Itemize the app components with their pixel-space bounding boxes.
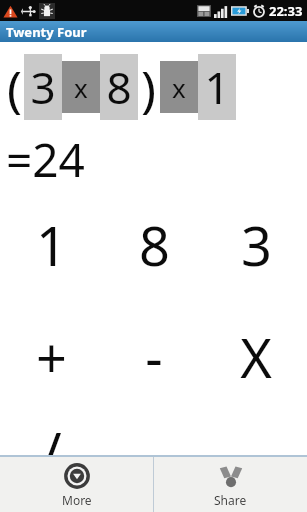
staticText: x bbox=[172, 70, 186, 105]
button[interactable]: 3 bbox=[205, 208, 307, 278]
staticText: / bbox=[41, 414, 62, 484]
staticText: X bbox=[240, 320, 272, 390]
button[interactable]: Share bbox=[154, 457, 307, 512]
button[interactable] bbox=[205, 414, 307, 484]
staticText: 8 bbox=[106, 57, 132, 117]
staticText: Twenty Four bbox=[6, 23, 87, 41]
button[interactable]: X bbox=[205, 320, 307, 390]
staticText: 8 bbox=[139, 208, 170, 278]
button[interactable]: + bbox=[0, 320, 103, 390]
button[interactable]: 8 bbox=[100, 54, 138, 120]
staticText: =24 bbox=[6, 128, 85, 191]
button[interactable]: - bbox=[103, 320, 205, 390]
button[interactable]: 8 bbox=[103, 208, 205, 278]
button[interactable]: 1 bbox=[198, 54, 236, 120]
staticText: ) bbox=[141, 54, 156, 120]
staticText: 3 bbox=[241, 208, 272, 278]
staticText: - bbox=[145, 320, 163, 390]
staticText: 3 bbox=[30, 57, 56, 117]
button[interactable]: More bbox=[0, 457, 153, 512]
button[interactable]: x bbox=[62, 61, 100, 113]
button[interactable]: x bbox=[160, 61, 198, 113]
button[interactable]: / bbox=[0, 414, 103, 484]
staticText: 1 bbox=[204, 57, 230, 117]
staticText: ( bbox=[7, 54, 22, 120]
staticText: 1 bbox=[36, 208, 67, 278]
button[interactable]: 1 bbox=[0, 208, 103, 278]
staticText: More bbox=[62, 492, 92, 508]
staticText: + bbox=[36, 320, 67, 390]
staticText: x bbox=[74, 70, 88, 105]
button[interactable] bbox=[103, 414, 205, 484]
staticText: 22:33 bbox=[269, 2, 303, 20]
button[interactable]: 3 bbox=[24, 54, 62, 120]
staticText: Share bbox=[214, 492, 247, 508]
